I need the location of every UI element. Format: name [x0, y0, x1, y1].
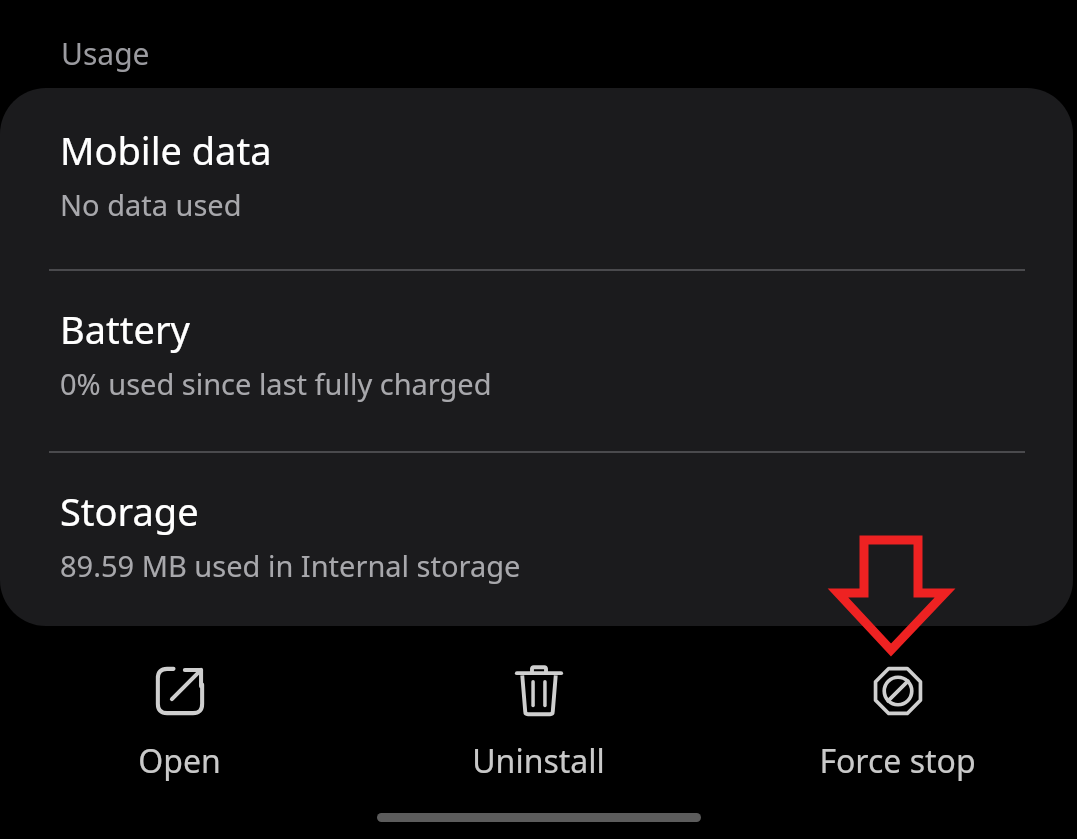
button[interactable]: Force stop: [718, 655, 1077, 783]
staticText: 0% used since last fully charged: [60, 364, 492, 403]
staticText: Open: [138, 739, 221, 783]
button[interactable]: Storage: [0, 453, 1073, 626]
staticText: Usage: [61, 33, 150, 74]
staticText: Mobile data: [60, 124, 272, 176]
button[interactable]: Open: [0, 655, 359, 783]
staticText: Storage: [60, 485, 199, 537]
button[interactable]: Battery: [0, 271, 1073, 451]
button[interactable]: Mobile data: [0, 88, 1073, 269]
staticText: Uninstall: [472, 739, 605, 783]
staticText: Battery: [60, 303, 190, 355]
staticText: 89.59 MB used in Internal storage: [60, 546, 521, 585]
staticText: No data used: [60, 185, 242, 224]
button[interactable]: Uninstall: [359, 655, 718, 783]
staticText: Force stop: [819, 739, 976, 783]
